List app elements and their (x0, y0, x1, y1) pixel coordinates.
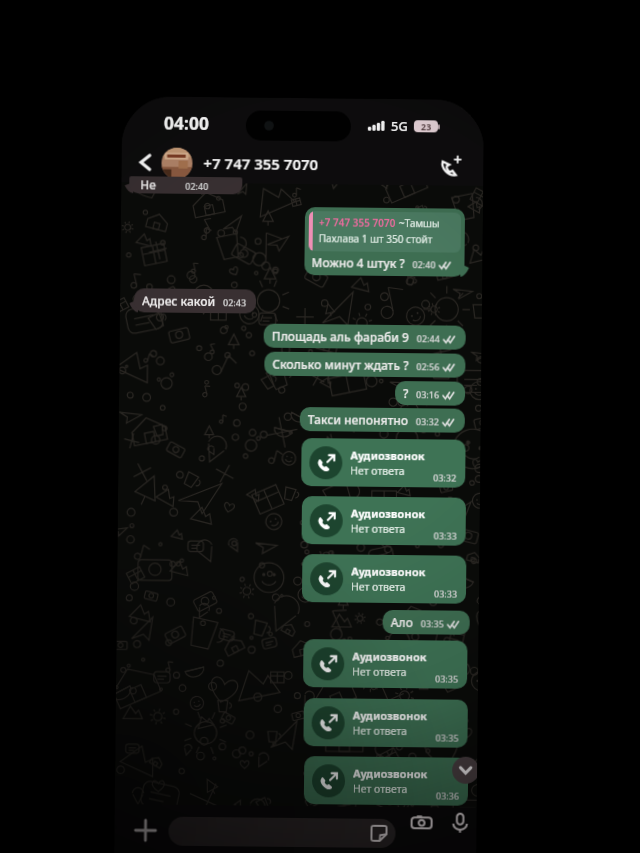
staticText: 03:33 (434, 529, 458, 542)
button[interactable]: Аудиозвонок (303, 698, 468, 748)
staticText: 5G (391, 117, 408, 135)
button[interactable]: Такси непонятно (308, 411, 456, 429)
staticText: Площадь аль фараби 9 (272, 328, 410, 345)
staticText: 02:43 (223, 296, 247, 308)
staticText: Нет ответа (351, 580, 406, 594)
button[interactable]: Attach (130, 815, 161, 846)
button[interactable] (168, 817, 396, 848)
button[interactable]: Add call (435, 149, 468, 182)
staticText: 04:00 (164, 111, 209, 135)
staticText: 03:36 (436, 789, 460, 802)
staticText: 03:35 (421, 617, 445, 630)
button[interactable]: Back (131, 148, 160, 176)
staticText: 03:32 (416, 415, 440, 427)
staticText: 03:16 (416, 388, 440, 400)
staticText: 02:56 (416, 360, 440, 372)
staticText: Пахлава 1 шт 350 стойт (319, 231, 433, 246)
staticText: Аудиозвонок (353, 766, 428, 781)
button[interactable]: Camera (408, 809, 435, 835)
button[interactable]: Аудиозвонок (303, 639, 467, 689)
staticText: 02:44 (417, 332, 441, 344)
button[interactable]: Аудиозвонок (301, 438, 466, 488)
button[interactable]: Адрес какой (142, 292, 247, 309)
staticText: Аудиозвонок (353, 708, 428, 723)
staticText: Такси непонятно (308, 411, 409, 428)
staticText: Аудиозвонок (350, 447, 426, 463)
button[interactable]: Voice message (446, 810, 473, 836)
staticText: 02:40 (185, 180, 209, 192)
staticText: ~Тамшы (399, 216, 440, 230)
staticText: 03:35 (435, 672, 459, 685)
button[interactable]: Сколько минут ждать ? (272, 356, 456, 374)
button[interactable]: Profile photo (161, 147, 193, 179)
button[interactable]: +7 747 355 7070 (203, 153, 319, 174)
button[interactable]: Scroll to bottom (452, 757, 477, 784)
staticText: 03:33 (434, 587, 458, 600)
staticText: 03:32 (433, 471, 457, 484)
button[interactable]: Ало (391, 614, 461, 631)
staticText: Нет ответа (351, 521, 406, 536)
staticText: Не (140, 176, 156, 192)
staticText: Аудиозвонок (351, 505, 426, 521)
staticText: Аудиозвонок (351, 564, 426, 579)
staticText: Адрес какой (142, 292, 216, 309)
staticText: +7 747 355 7070 (319, 215, 396, 230)
staticText: Нет ответа (353, 782, 408, 796)
staticText: 23 (421, 120, 432, 132)
button[interactable]: +7 747 355 7070 (308, 211, 461, 273)
staticText: Аудиозвонок (352, 649, 427, 664)
staticText: Ало (391, 614, 414, 630)
button[interactable]: Площадь аль фараби 9 (272, 328, 457, 346)
staticText: Нет ответа (350, 463, 405, 478)
staticText: 02:40 (412, 258, 436, 270)
button[interactable]: Аудиозвонок (301, 496, 466, 546)
staticText: ? (403, 385, 409, 401)
button[interactable]: Не (129, 176, 242, 194)
staticText: 03:35 (435, 731, 459, 744)
button[interactable]: ? (403, 385, 456, 402)
button[interactable]: Аудиозвонок (304, 756, 468, 806)
staticText: Нет ответа (352, 724, 408, 738)
button[interactable]: Аудиозвонок (302, 554, 466, 604)
staticText: Сколько минут ждать ? (272, 356, 409, 373)
staticText: Можно 4 штук ? (311, 254, 406, 271)
staticText: Нет ответа (352, 665, 407, 679)
